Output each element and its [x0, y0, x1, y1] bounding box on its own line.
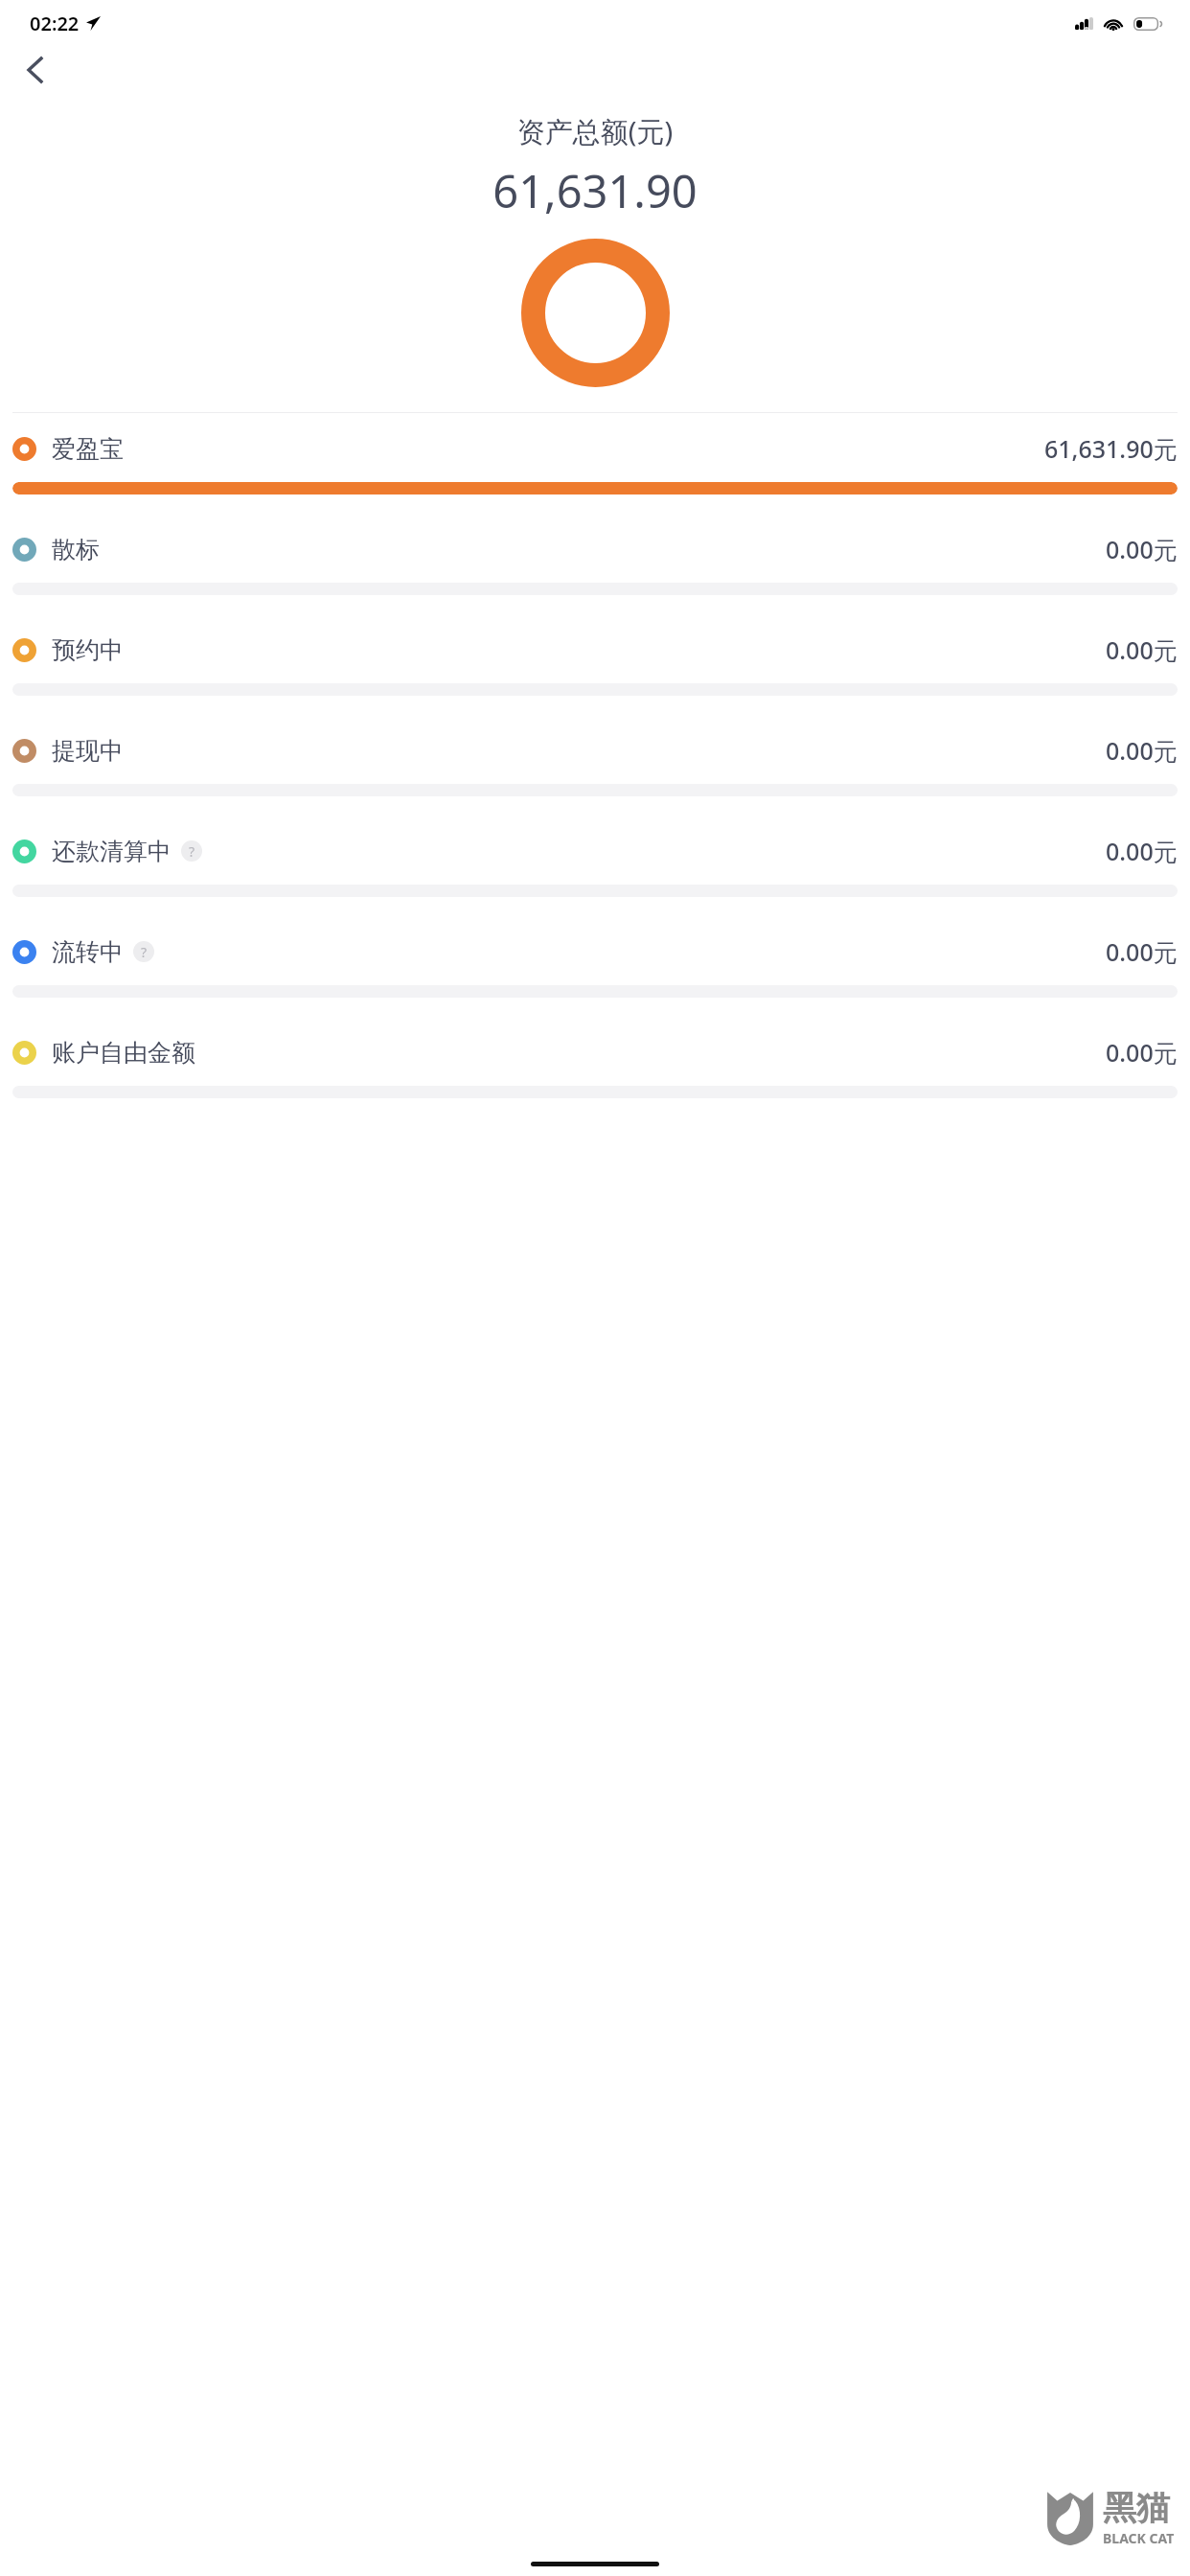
- staticText: 61,631.90: [0, 160, 1190, 221]
- staticText: 还款清算中: [52, 837, 172, 866]
- staticText: 爱盈宝: [52, 434, 124, 464]
- button[interactable]: 流转中: [0, 916, 1190, 1017]
- staticText: 预约中: [52, 635, 124, 665]
- staticText: BLACK CAT: [1103, 2529, 1175, 2547]
- staticText: 提现中: [52, 736, 124, 766]
- staticText: 账户自由金额: [52, 1038, 195, 1068]
- staticText: 61,631.90元: [1044, 432, 1178, 465]
- button[interactable]: 预约中: [0, 614, 1190, 715]
- staticText: ?: [189, 842, 195, 861]
- staticText: 0.00元: [1106, 734, 1178, 767]
- staticText: 02:22: [30, 11, 80, 36]
- staticText: 流转中: [52, 937, 124, 967]
- staticText: 散标: [52, 535, 100, 564]
- button[interactable]: 还款清算中: [0, 816, 1190, 916]
- button[interactable]: 账户自由金额: [0, 1017, 1190, 1117]
- staticText: 0.00元: [1106, 935, 1178, 968]
- staticText: 黑猫: [1103, 2487, 1170, 2529]
- button[interactable]: Back: [13, 49, 56, 91]
- button[interactable]: 爱盈宝: [0, 413, 1190, 514]
- button[interactable]: Help: [181, 840, 202, 862]
- button[interactable]: 提现中: [0, 715, 1190, 816]
- staticText: 0.00元: [1106, 533, 1178, 565]
- staticText: 0.00元: [1106, 1036, 1178, 1069]
- staticText: 0.00元: [1106, 835, 1178, 867]
- button[interactable]: 散标: [0, 514, 1190, 614]
- staticText: 资产总额(元): [0, 112, 1190, 150]
- staticText: ?: [141, 943, 148, 961]
- staticText: 0.00元: [1106, 633, 1178, 666]
- button[interactable]: Help: [133, 941, 154, 962]
